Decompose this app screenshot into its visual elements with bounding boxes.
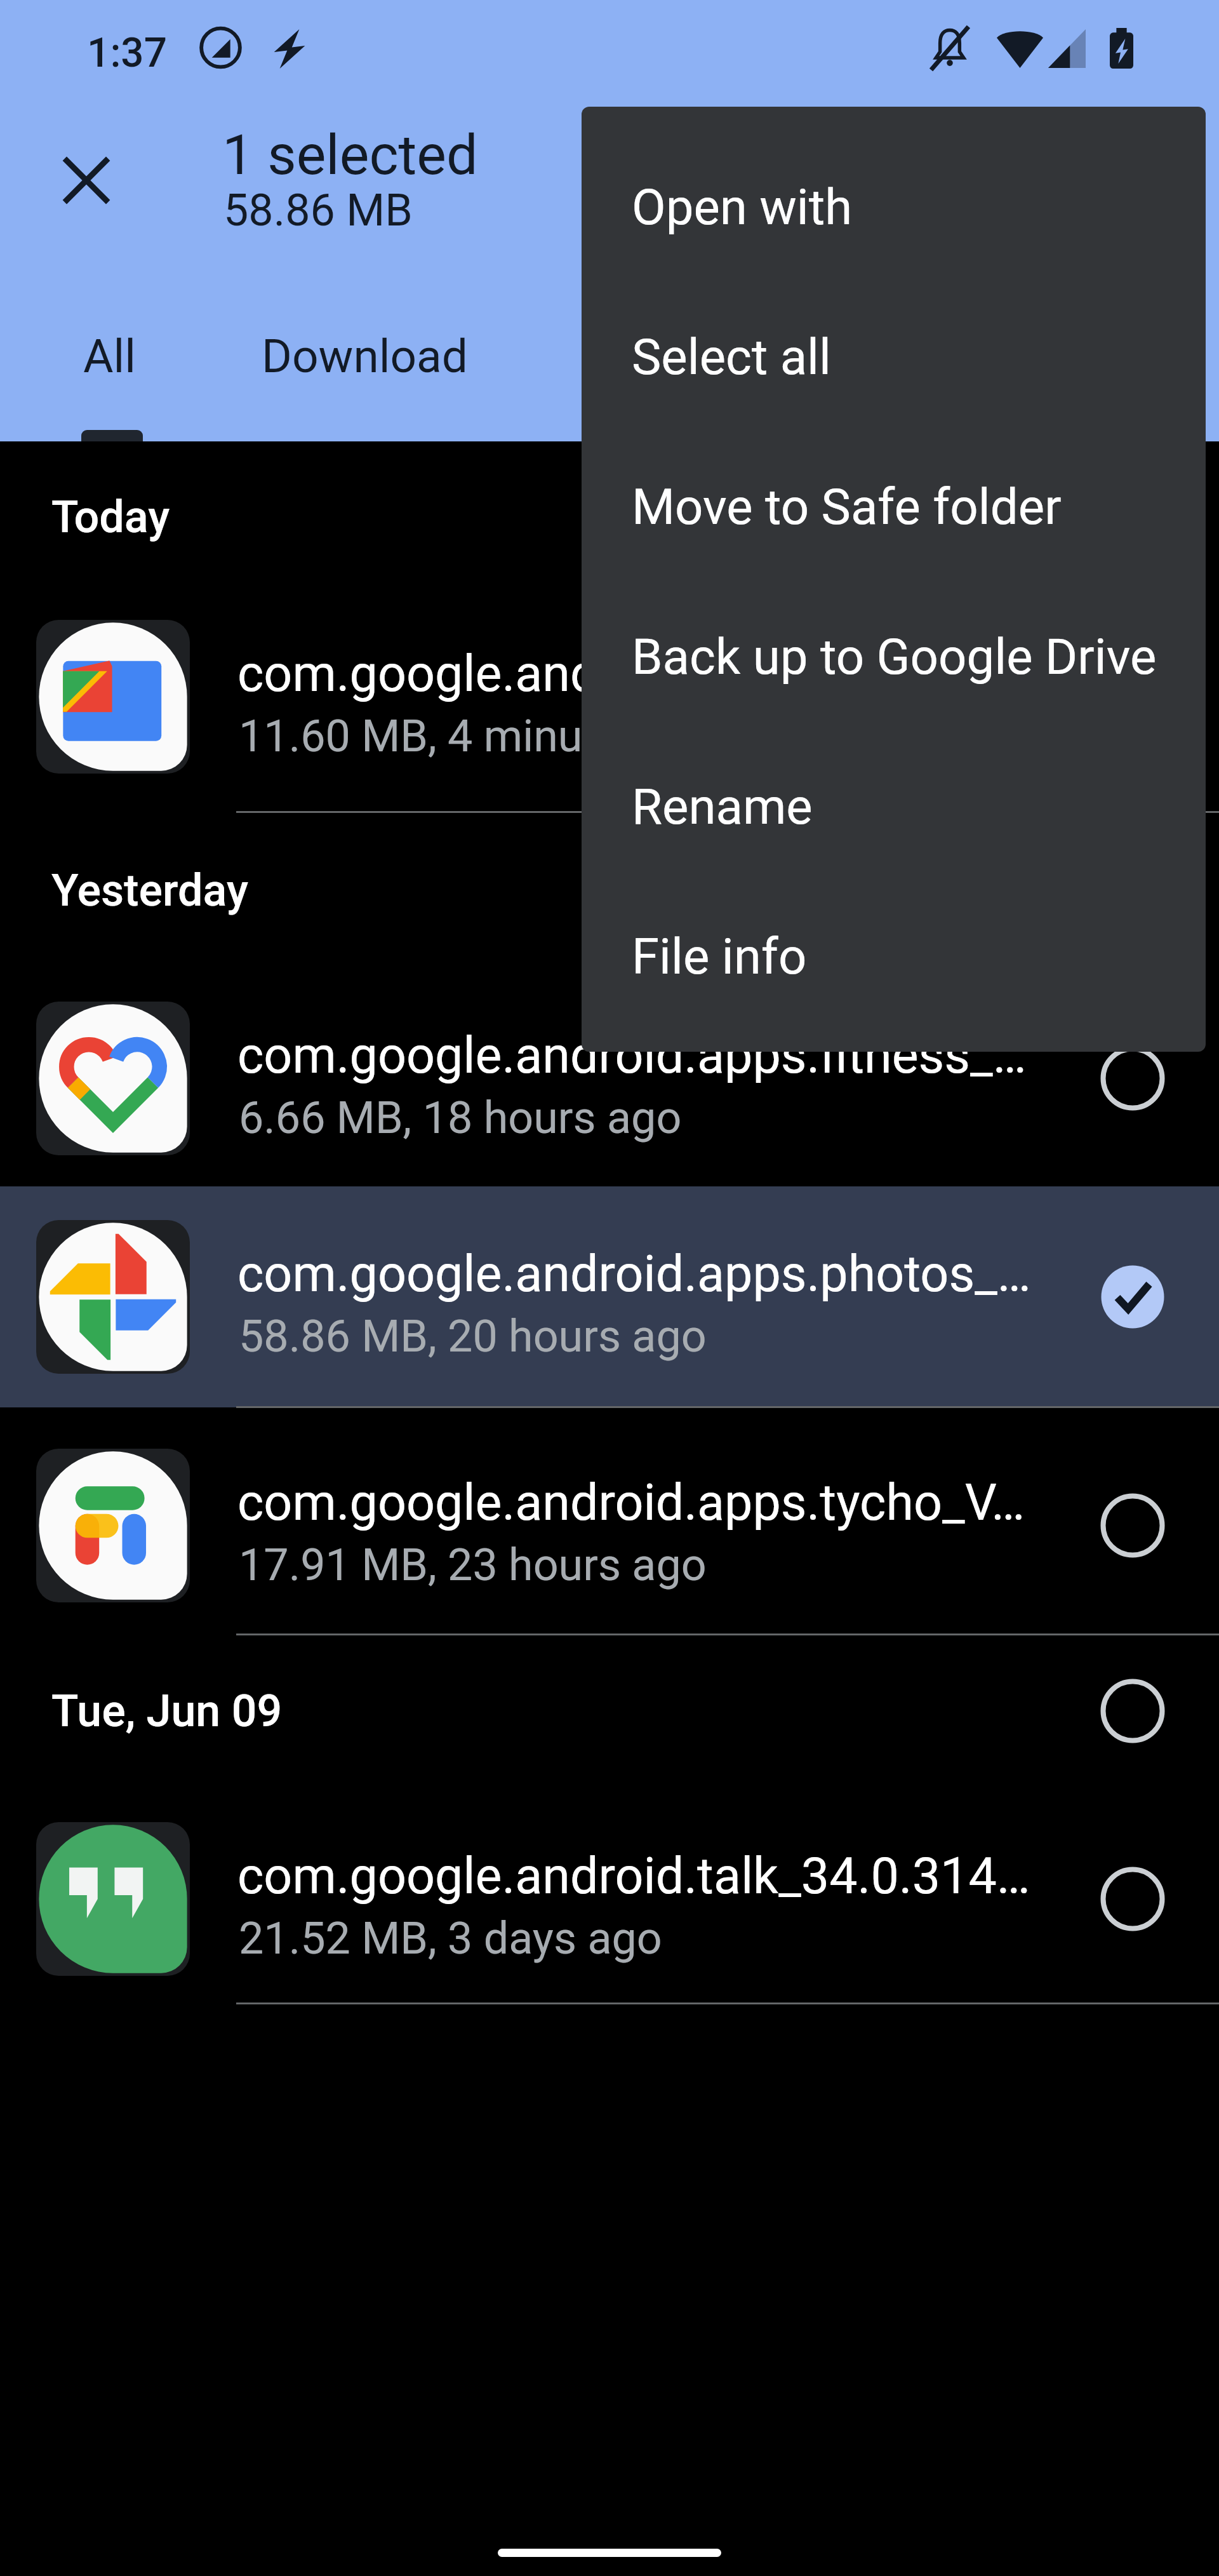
button[interactable]: Move to Safe folder — [582, 432, 1206, 582]
button[interactable]: com.google.android.apps.photos_… — [0, 1186, 1219, 1407]
staticText: Back up to Google Drive — [632, 628, 1157, 686]
staticText: Rename — [632, 778, 813, 836]
button[interactable]: com.google.android.apps.tycho_V… — [0, 1415, 1219, 1636]
button[interactable]: Download — [243, 301, 487, 441]
staticText: Today — [51, 491, 170, 543]
staticText: All — [83, 329, 137, 384]
staticText: com.google.android.apps.tycho_V… — [237, 1473, 1031, 1533]
button[interactable]: com.google.android.talk_34.0.314… — [0, 1788, 1219, 2009]
button[interactable]: Open with — [582, 132, 1206, 282]
button[interactable]: File info — [582, 882, 1206, 1031]
button[interactable]: Select item — [1085, 1851, 1180, 1947]
staticText: Select all — [632, 328, 832, 386]
staticText: File info — [632, 928, 807, 986]
button[interactable]: Selected — [1085, 1249, 1180, 1345]
staticText: 1 selected — [222, 122, 478, 187]
staticText: Open with — [632, 178, 853, 236]
button[interactable]: com.google.android.apps.fitness_… — [0, 968, 1219, 1189]
staticText: 21.52 MB, 3 days ago — [239, 1912, 662, 1964]
button[interactable]: Select item — [1085, 649, 1180, 744]
staticText: Move to Safe folder — [632, 478, 1062, 536]
staticText: 1:37 — [87, 29, 168, 77]
staticText: 11.60 MB, 4 minutes ago — [239, 710, 729, 762]
staticText: com.google.android.talk_34.0.314… — [237, 1847, 1031, 1906]
button[interactable]: Select all in group — [1085, 1663, 1180, 1759]
button[interactable]: All — [18, 301, 202, 441]
button[interactable]: Select item — [1085, 1031, 1180, 1126]
staticText: com.google.android.apps.nbu.files_… — [237, 645, 1031, 704]
button[interactable]: com.google.android.apps.nbu.files_… — [0, 586, 1219, 807]
button[interactable]: Select item — [1085, 1478, 1180, 1573]
staticText: com.google.android.apps.fitness_… — [237, 1026, 1031, 1085]
button[interactable]: Close selection — [29, 123, 143, 238]
staticText: 58.86 MB, 20 hours ago — [239, 1310, 707, 1362]
button[interactable]: Select all — [582, 282, 1206, 432]
staticText: Yesterday — [51, 864, 249, 916]
staticText: com.google.android.apps.photos_… — [237, 1245, 1031, 1304]
staticText: 17.91 MB, 23 hours ago — [239, 1539, 707, 1591]
staticText: Download — [262, 329, 468, 384]
staticText: Tue, Jun 09 — [51, 1685, 283, 1737]
button[interactable]: Rename — [582, 732, 1206, 882]
staticText: 6.66 MB, 18 hours ago — [239, 1092, 682, 1144]
button[interactable]: Back up to Google Drive — [582, 582, 1206, 732]
staticText: 58.86 MB — [223, 184, 413, 236]
